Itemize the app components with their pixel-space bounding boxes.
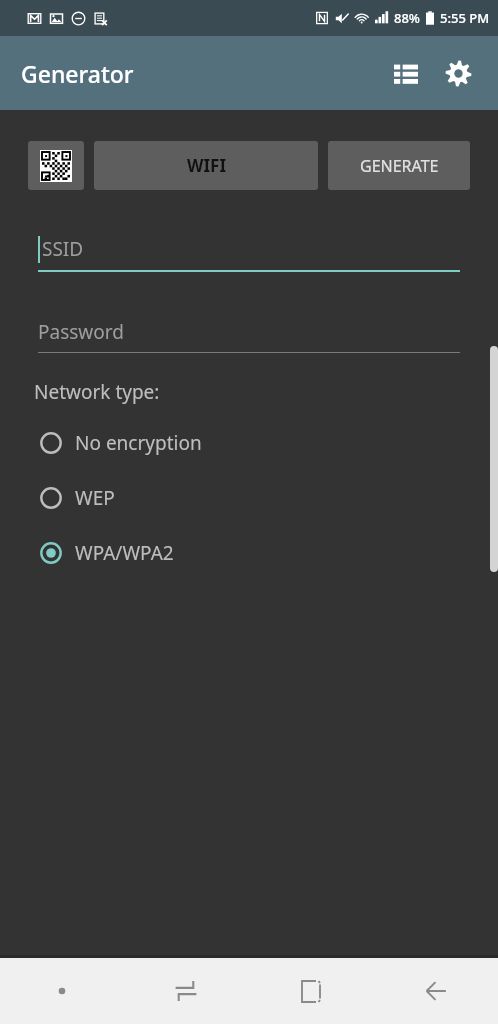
staticText: SSID: [42, 236, 84, 262]
staticText: WPA/WPA2: [75, 540, 174, 566]
staticText: 88%: [394, 9, 420, 27]
button[interactable]: Password: [38, 311, 460, 353]
button[interactable]: SSID: [38, 226, 460, 272]
staticText: GENERATE: [360, 155, 439, 177]
button[interactable]: WIFI: [94, 141, 318, 190]
staticText: Generator: [21, 58, 134, 89]
staticText: 5:55 PM: [440, 9, 490, 27]
staticText: No encryption: [75, 430, 202, 456]
staticText: WEP: [75, 485, 115, 511]
button[interactable]: No encryption: [0, 419, 498, 466]
button[interactable]: Scan QR code: [28, 141, 84, 190]
button[interactable]: List: [380, 47, 432, 99]
button[interactable]: Assistant: [0, 958, 124, 1024]
button[interactable]: GENERATE: [328, 141, 470, 190]
button[interactable]: WEP: [0, 474, 498, 521]
staticText: WIFI: [187, 154, 226, 177]
staticText: Password: [38, 319, 124, 345]
staticText: Network type:: [34, 379, 160, 405]
button[interactable]: Recent apps: [248, 958, 373, 1024]
button[interactable]: Switch apps: [124, 958, 248, 1024]
button[interactable]: Back: [373, 958, 498, 1024]
button[interactable]: Settings: [432, 47, 484, 99]
button[interactable]: WPA/WPA2: [0, 529, 498, 576]
